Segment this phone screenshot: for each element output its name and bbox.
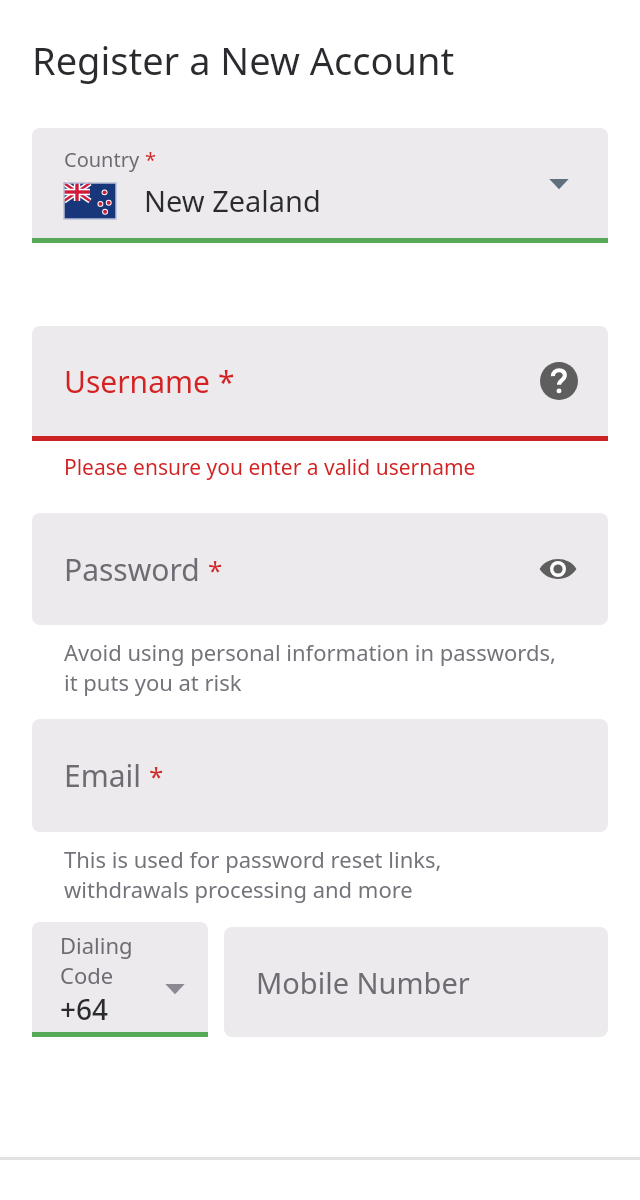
other: Select country <box>548 172 570 194</box>
staticText: * <box>149 758 164 793</box>
staticText: This is used for password reset links, w… <box>64 844 568 904</box>
staticText: Please ensure you enter a valid username <box>64 453 476 482</box>
staticText: Password <box>64 549 208 590</box>
button[interactable]: Username help <box>540 362 578 400</box>
staticText: * <box>208 552 223 587</box>
staticText: Avoid using personal information in pass… <box>64 637 568 697</box>
staticText: Mobile Number <box>256 963 470 1002</box>
staticText: * <box>145 146 157 173</box>
staticText: +64 <box>60 990 109 1028</box>
other: Select dialing code <box>164 977 186 999</box>
button[interactable]: Show password <box>538 549 578 589</box>
staticText: New Zealand <box>144 181 321 220</box>
staticText: Country <box>64 146 145 173</box>
button[interactable]: Email <box>32 719 608 832</box>
staticText: Email <box>64 755 149 796</box>
button[interactable]: Country <box>32 128 608 243</box>
staticText: * <box>218 361 235 402</box>
button[interactable]: Username <box>32 326 608 482</box>
staticText: Username <box>64 361 218 402</box>
staticText: Dialing <box>60 930 133 960</box>
staticText: Code <box>60 960 114 990</box>
button[interactable]: Dialing <box>32 922 208 1037</box>
staticText: Register a New Account <box>32 34 455 86</box>
button[interactable]: Mobile Number <box>224 927 608 1037</box>
button[interactable]: Password <box>32 513 608 625</box>
